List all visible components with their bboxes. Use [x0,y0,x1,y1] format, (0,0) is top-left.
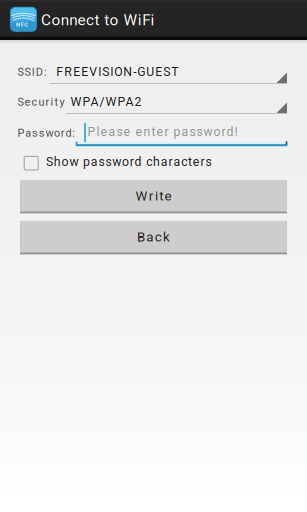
staticText: Write [135,188,172,204]
button[interactable]: Show password characters [0,0,307,512]
button[interactable]: Write [0,0,307,512]
staticText: Back [137,229,170,245]
staticText: Password: [17,127,75,139]
staticText: WPA/WPA2 [70,95,141,109]
button[interactable]: Security [0,0,307,512]
staticText: NFC· [16,21,31,28]
button[interactable]: NFC· [0,0,200,37]
button[interactable]: SSID: [0,0,307,512]
staticText: SSID: [17,66,47,78]
staticText: Security [17,96,64,108]
staticText: Connect to WiFi [41,11,155,29]
staticText: FREEVISION-GUEST [56,65,178,79]
button[interactable]: Back [0,0,307,512]
button[interactable]: Password: [0,0,307,512]
staticText: Show password characters [46,154,211,169]
staticText: Please enter password! [87,124,237,139]
